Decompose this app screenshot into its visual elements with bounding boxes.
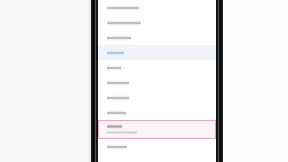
button[interactable]: Privacy — [98, 60, 216, 75]
button[interactable]: Downloads — [98, 139, 216, 154]
button[interactable]: Notifications — [98, 30, 216, 45]
button[interactable]: Accessibility — [98, 75, 216, 90]
button[interactable]: Link Usage — data information — [98, 120, 216, 139]
button[interactable]: Account — [98, 45, 216, 60]
button[interactable]: Messages and chat — [98, 15, 216, 30]
button[interactable]: Payment methods — [98, 0, 216, 15]
button[interactable]: Site settings — [98, 90, 216, 105]
button[interactable]: Languages — [98, 105, 216, 120]
